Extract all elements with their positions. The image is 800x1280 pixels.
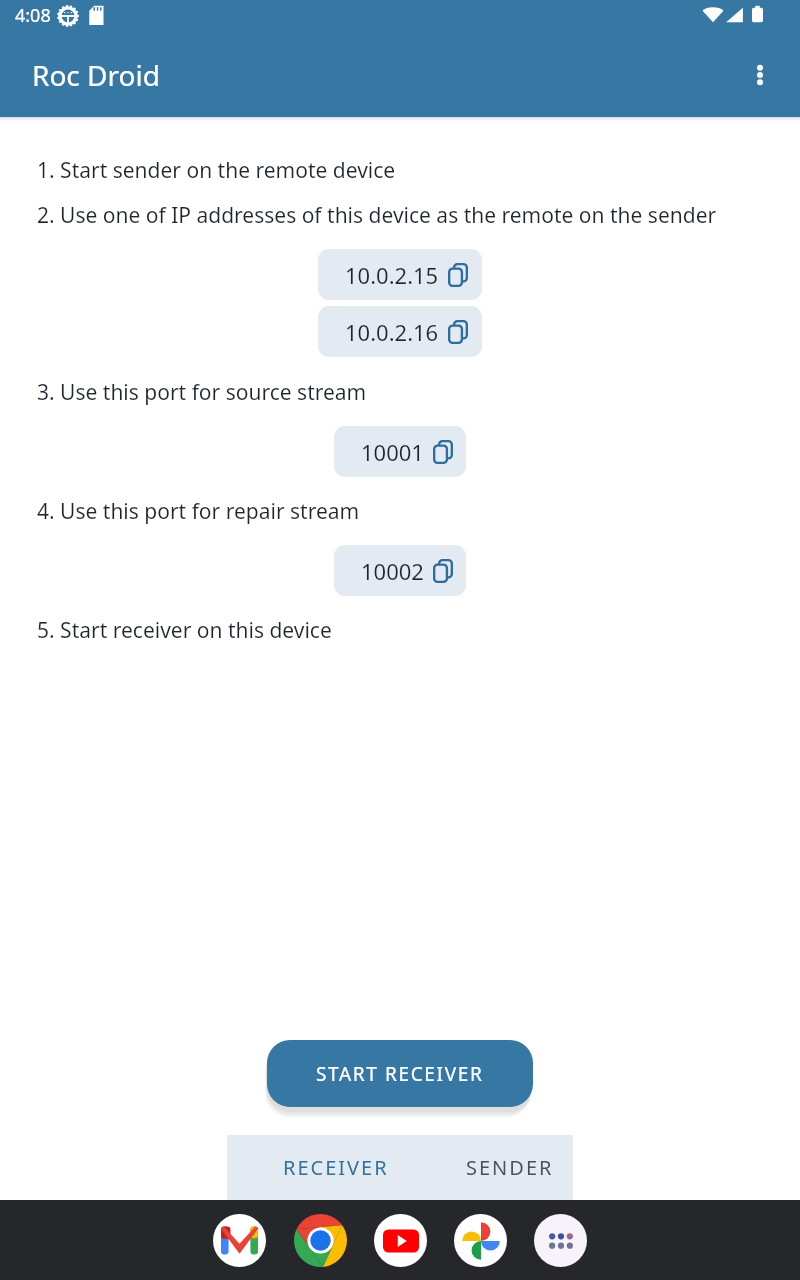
button[interactable]: All apps [534, 1214, 587, 1267]
staticText: START RECEIVER [316, 1061, 484, 1087]
staticText: 2. Use one of IP addresses of this devic… [37, 201, 717, 230]
button[interactable]: Copy 10001 [334, 426, 466, 477]
staticText: 10.0.2.15 [345, 260, 439, 290]
button[interactable]: Copy 10.0.2.16 [318, 306, 482, 357]
staticText: 1. Start sender on the remote device [37, 156, 396, 185]
staticText: 5. Start receiver on this device [37, 616, 332, 645]
staticText: Roc Droid [32, 56, 160, 94]
button[interactable]: SENDER [440, 1135, 579, 1200]
button[interactable]: Copy 10.0.2.15 [318, 249, 482, 300]
staticText: SENDER [466, 1154, 554, 1181]
button[interactable]: More options [736, 51, 784, 99]
button[interactable]: Gmail [213, 1214, 266, 1267]
staticText: RECEIVER [283, 1154, 389, 1181]
button[interactable]: Chrome [293, 1213, 347, 1267]
staticText: 3. Use this port for source stream [37, 378, 367, 407]
staticText: 4. Use this port for repair stream [37, 497, 360, 526]
button[interactable]: Google Photos [454, 1214, 507, 1267]
button[interactable]: Copy 10002 [334, 545, 466, 596]
staticText: 4:08 [15, 3, 51, 28]
button[interactable]: START RECEIVER [267, 1040, 533, 1107]
staticText: 10001 [361, 437, 424, 467]
button[interactable]: YouTube [374, 1214, 427, 1267]
button[interactable]: RECEIVER [262, 1135, 410, 1200]
staticText: 10002 [361, 556, 424, 586]
staticText: 10.0.2.16 [345, 317, 439, 347]
